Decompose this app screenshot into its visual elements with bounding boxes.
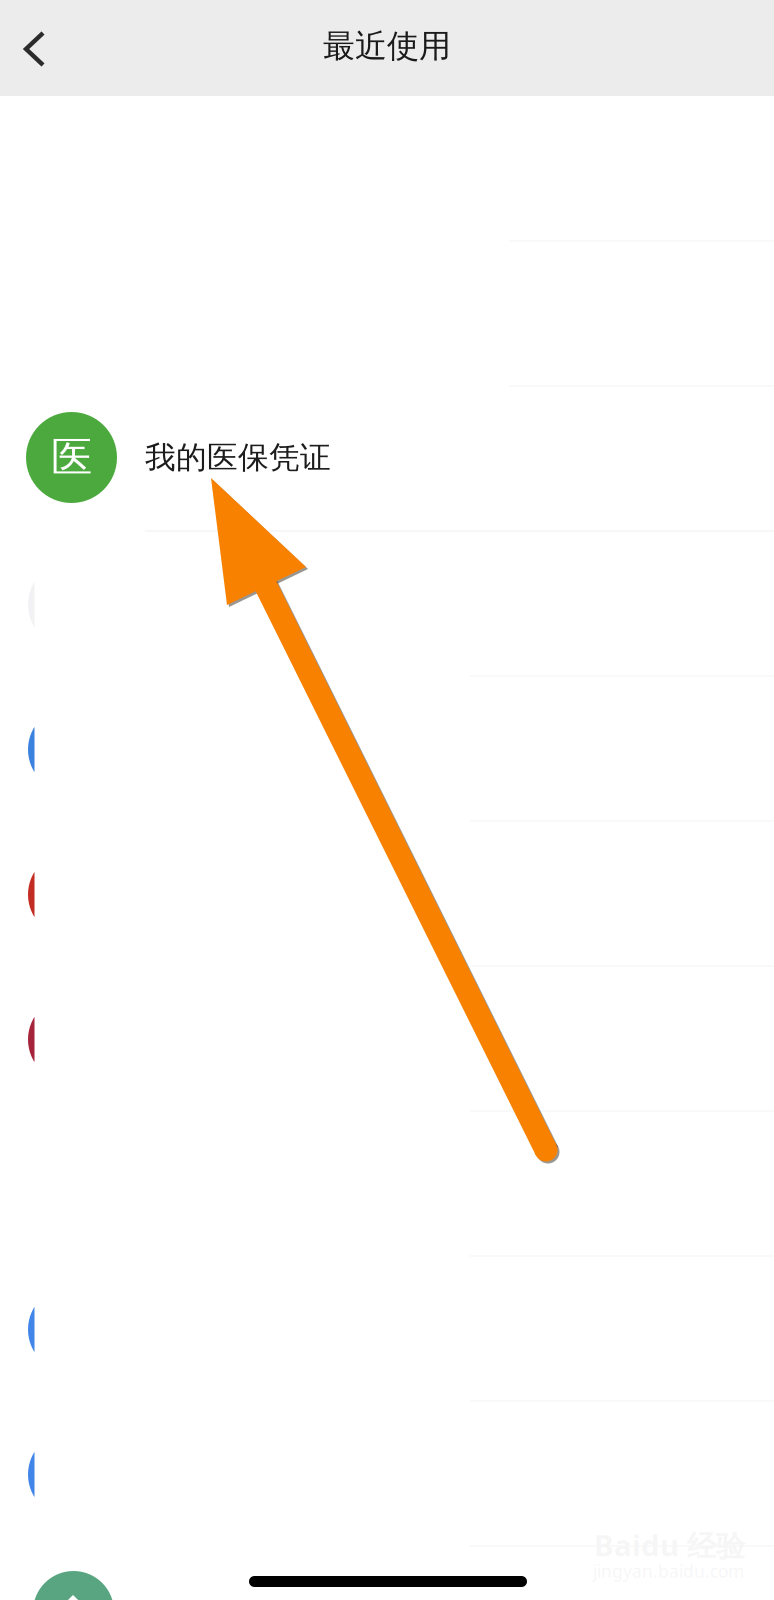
staticText: 最近使用 bbox=[323, 26, 451, 66]
button[interactable]: 返回 bbox=[0, 0, 72, 96]
staticText: 医 bbox=[51, 432, 92, 483]
staticText: 我的医保凭证 bbox=[145, 439, 331, 476]
staticText: Baidu 经验 bbox=[594, 1525, 745, 1564]
button[interactable]: 健康服务 bbox=[0, 1547, 774, 1600]
button[interactable]: 医 bbox=[0, 387, 774, 532]
